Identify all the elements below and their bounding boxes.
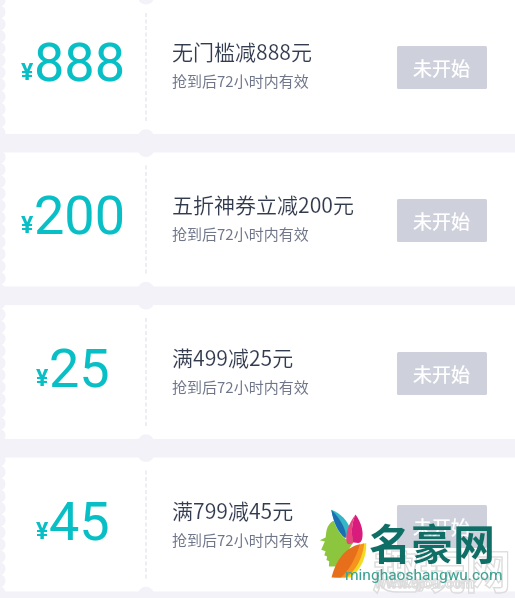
staticText: minghaoshangwu.com bbox=[345, 566, 503, 584]
staticText: 未开始 bbox=[413, 207, 471, 235]
staticText: 未开始 bbox=[413, 513, 471, 541]
staticText: ¥ bbox=[21, 212, 34, 239]
button[interactable]: ¥ bbox=[0, 306, 515, 440]
staticText: www.qjou.com bbox=[375, 574, 475, 592]
button[interactable]: 未开始 bbox=[397, 505, 487, 548]
staticText: ¥ bbox=[21, 59, 34, 86]
staticText: 名豪网 bbox=[369, 511, 496, 572]
staticText: 45 bbox=[49, 490, 110, 553]
button[interactable]: 未开始 bbox=[397, 46, 487, 89]
staticText: ¥ bbox=[36, 518, 49, 545]
staticText: 无门槛减888元 bbox=[172, 36, 312, 66]
staticText: 满799减45元 bbox=[172, 495, 294, 525]
staticText: 抢到后72小时内有效 bbox=[172, 223, 309, 245]
staticText: 未开始 bbox=[413, 360, 471, 388]
staticText: 五折神券立减200元 bbox=[172, 189, 354, 219]
button[interactable]: ¥ bbox=[0, 459, 515, 593]
staticText: 未开始 bbox=[413, 54, 471, 82]
staticText: 趣玩网 bbox=[373, 535, 511, 598]
staticText: 抢到后72小时内有效 bbox=[172, 70, 309, 92]
staticText: 200 bbox=[34, 184, 126, 247]
staticText: 抢到后72小时内有效 bbox=[172, 529, 309, 551]
button[interactable]: ¥ bbox=[0, 0, 515, 134]
staticText: 满499减25元 bbox=[172, 342, 294, 372]
staticText: 888 bbox=[34, 31, 126, 94]
staticText: 抢到后72小时内有效 bbox=[172, 376, 309, 398]
staticText: ¥ bbox=[36, 365, 49, 392]
button[interactable]: 未开始 bbox=[397, 199, 487, 242]
button[interactable]: ¥ bbox=[0, 153, 515, 287]
button[interactable]: 未开始 bbox=[397, 352, 487, 395]
staticText: 25 bbox=[49, 337, 110, 400]
